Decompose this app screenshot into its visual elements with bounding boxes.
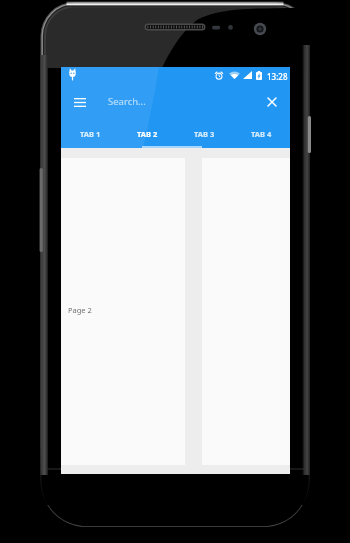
button[interactable]: TAB 4: [233, 120, 290, 148]
staticText: TAB 2: [137, 129, 158, 139]
staticText: TAB 3: [194, 129, 215, 139]
button[interactable]: TAB 2: [119, 120, 176, 148]
button[interactable]: TAB 1: [61, 120, 119, 148]
button[interactable]: TAB 3: [176, 120, 233, 148]
staticText: 13:28: [267, 71, 288, 82]
staticText: TAB 4: [251, 129, 272, 139]
button[interactable]: Close search: [259, 89, 285, 115]
staticText: Search...: [108, 95, 146, 108]
staticText: Page 2: [68, 305, 92, 315]
staticText: TAB 1: [80, 129, 101, 139]
button[interactable]: Open navigation drawer: [66, 88, 94, 116]
